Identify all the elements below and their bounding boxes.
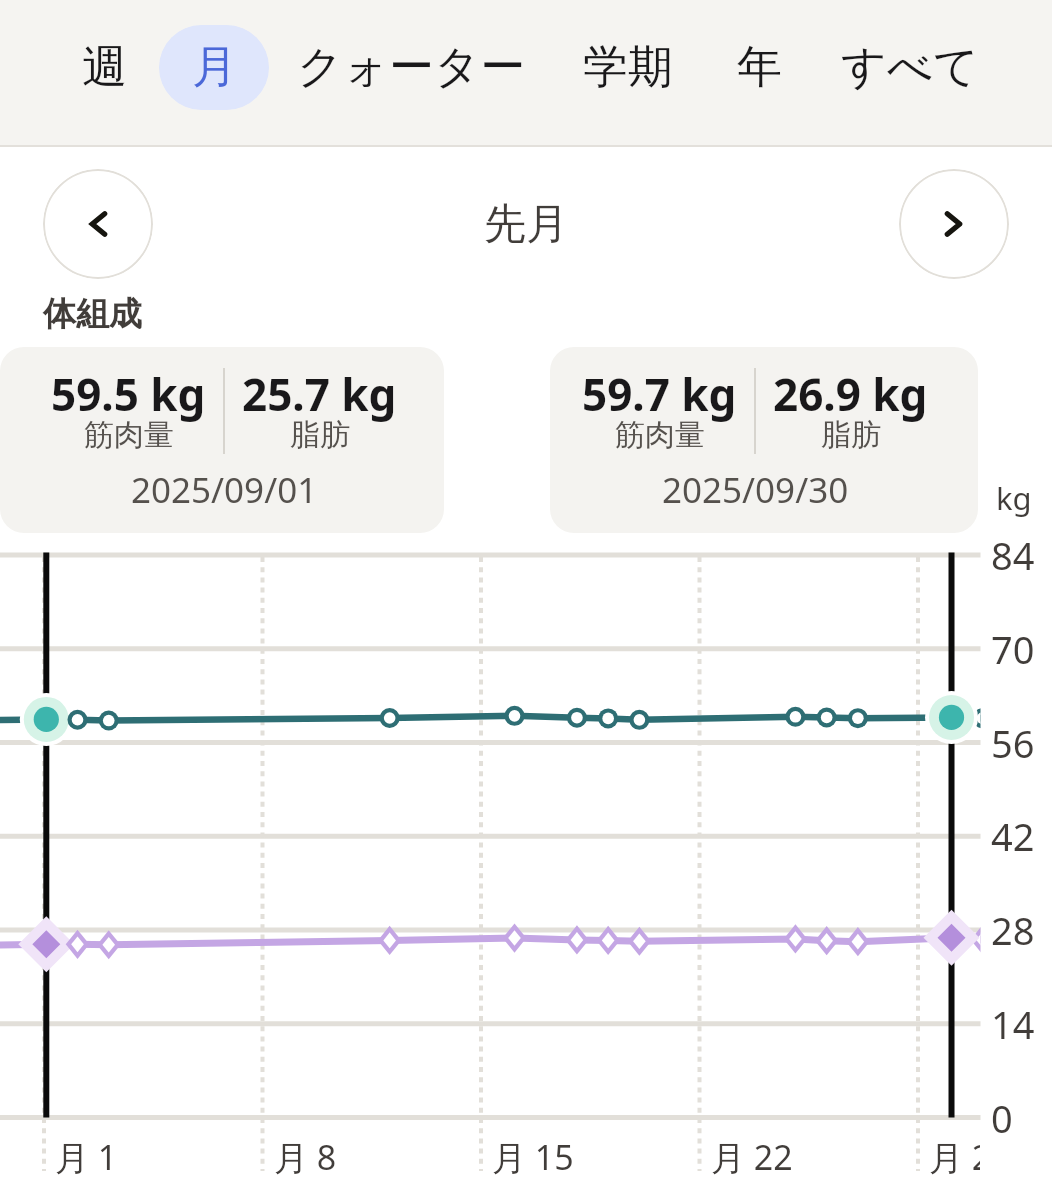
- staticText: 26.9 kg: [773, 364, 928, 424]
- staticText: 先月: [484, 198, 568, 251]
- staticText: 56: [991, 717, 1035, 769]
- button[interactable]: 学期: [554, 25, 702, 110]
- staticText: 週: [82, 39, 127, 96]
- staticText: 月 22: [711, 1134, 793, 1180]
- staticText: 学期: [583, 39, 673, 96]
- staticText: 70: [991, 623, 1035, 675]
- staticText: 0: [991, 1092, 1013, 1144]
- staticText: 25.7 kg: [242, 364, 397, 424]
- staticText: 14: [991, 998, 1035, 1050]
- staticText: 月: [192, 39, 237, 96]
- staticText: 月 15: [492, 1134, 574, 1180]
- button[interactable]: 59.7 kg: [550, 347, 978, 533]
- staticText: 筋肉量: [615, 416, 705, 454]
- button[interactable]: 年: [706, 25, 812, 110]
- staticText: 脂肪: [290, 416, 350, 454]
- staticText: 59.7 kg: [582, 364, 737, 424]
- button[interactable]: 週: [49, 25, 159, 110]
- staticText: クォーター: [297, 39, 526, 96]
- button[interactable]: 月: [159, 25, 269, 110]
- staticText: kg: [996, 477, 1032, 519]
- staticText: 年: [737, 39, 782, 96]
- staticText: 2025/09/01: [131, 466, 318, 514]
- staticText: 28: [991, 904, 1035, 956]
- button[interactable]: クォーター: [275, 25, 548, 110]
- staticText: 42: [991, 810, 1035, 862]
- staticText: 月 1: [55, 1134, 118, 1180]
- staticText: 脂肪: [821, 416, 881, 454]
- staticText: 2025/09/30: [662, 466, 849, 514]
- staticText: 体組成: [43, 293, 142, 335]
- staticText: 筋肉量: [84, 416, 174, 454]
- staticText: 84: [991, 529, 1035, 581]
- staticText: 月 29: [929, 1134, 980, 1180]
- staticText: 59.5 kg: [51, 364, 206, 424]
- staticText: 月 8: [274, 1134, 337, 1180]
- button[interactable]: 前の期間: [43, 169, 153, 279]
- button[interactable]: 59.5 kg: [0, 347, 444, 533]
- staticText: すべて: [841, 39, 980, 96]
- button[interactable]: 次の期間: [899, 169, 1009, 279]
- button[interactable]: すべて: [818, 25, 1003, 110]
